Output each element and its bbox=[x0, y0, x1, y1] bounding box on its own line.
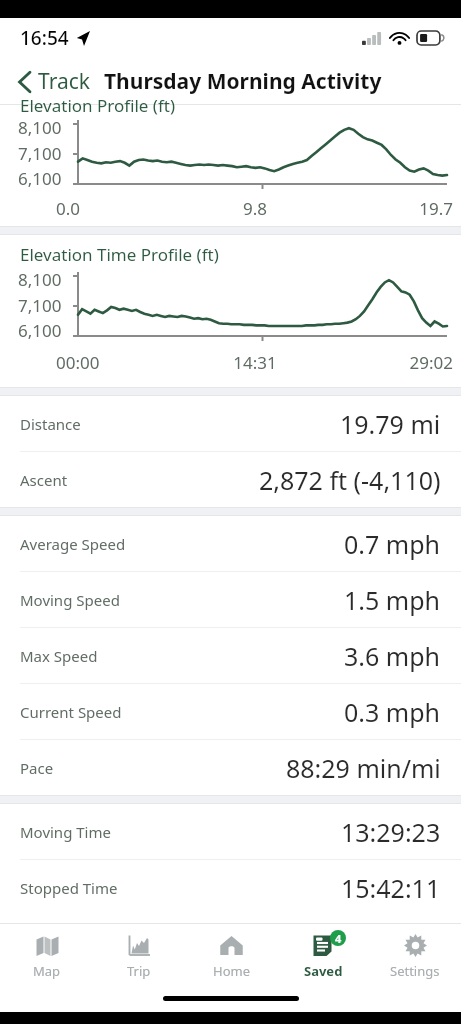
staticText: Map bbox=[33, 962, 61, 980]
staticText: 19.79 mi bbox=[340, 407, 441, 441]
button[interactable]: Average Speed bbox=[0, 516, 461, 571]
staticText: Home bbox=[213, 962, 250, 980]
button[interactable]: 4 bbox=[277, 924, 369, 984]
staticText: 16:54 bbox=[20, 25, 69, 51]
staticText: 3.6 mph bbox=[344, 639, 441, 673]
staticText: 8,100 bbox=[18, 116, 62, 139]
button[interactable]: Current Speed bbox=[0, 684, 461, 739]
staticText: 6,100 bbox=[18, 167, 62, 190]
staticText: 7,100 bbox=[18, 142, 62, 165]
staticText: 15:42:11 bbox=[341, 871, 441, 905]
staticText: 9.8 bbox=[189, 197, 321, 220]
staticText: Moving Speed bbox=[20, 590, 120, 610]
staticText: 0.0 bbox=[56, 197, 189, 220]
button[interactable]: Ascent bbox=[0, 452, 461, 507]
staticText: 0.3 mph bbox=[344, 695, 441, 729]
staticText: 88:29 min/mi bbox=[286, 751, 441, 785]
button[interactable]: Max Speed bbox=[0, 628, 461, 683]
staticText: Thursday Morning Activity bbox=[104, 67, 382, 96]
staticText: 19.7 bbox=[321, 197, 453, 220]
staticText: Elevation Profile (ft) bbox=[20, 94, 176, 117]
staticText: 00:00 bbox=[56, 351, 189, 374]
button[interactable]: Map bbox=[0, 924, 93, 984]
staticText: 2,872 ft (-4,110) bbox=[259, 463, 441, 497]
staticText: 4 bbox=[335, 931, 342, 946]
button[interactable]: Moving Time bbox=[0, 804, 461, 859]
staticText: 13:29:23 bbox=[341, 815, 441, 849]
button[interactable]: Moving Speed bbox=[0, 572, 461, 627]
button[interactable]: Settings bbox=[369, 924, 461, 984]
staticText: Pace bbox=[20, 758, 54, 778]
staticText: 1.5 mph bbox=[344, 583, 441, 617]
staticText: Current Speed bbox=[20, 702, 122, 722]
staticText: 0.7 mph bbox=[344, 527, 441, 561]
staticText: Settings bbox=[390, 962, 440, 980]
staticText: Saved bbox=[304, 962, 343, 980]
staticText: 8,100 bbox=[18, 268, 62, 291]
staticText: Max Speed bbox=[20, 646, 98, 666]
staticText: 14:31 bbox=[189, 351, 321, 374]
button[interactable]: Back to Track bbox=[14, 63, 94, 100]
button[interactable]: Home bbox=[185, 924, 277, 984]
staticText: Distance bbox=[20, 414, 81, 434]
staticText: Moving Time bbox=[20, 822, 111, 842]
button[interactable]: Stopped Time bbox=[0, 860, 461, 915]
staticText: Stopped Time bbox=[20, 878, 118, 898]
staticText: Track bbox=[38, 67, 90, 96]
button[interactable]: Pace bbox=[0, 740, 461, 795]
staticText: 29:02 bbox=[321, 351, 453, 374]
staticText: Elevation Time Profile (ft) bbox=[20, 243, 219, 266]
button[interactable]: Distance bbox=[0, 396, 461, 451]
staticText: Average Speed bbox=[20, 534, 126, 554]
staticText: 6,100 bbox=[18, 319, 62, 342]
staticText: Trip bbox=[127, 962, 151, 980]
button[interactable]: Trip bbox=[93, 924, 185, 984]
staticText: Ascent bbox=[20, 470, 68, 490]
staticText: 7,100 bbox=[18, 294, 62, 317]
